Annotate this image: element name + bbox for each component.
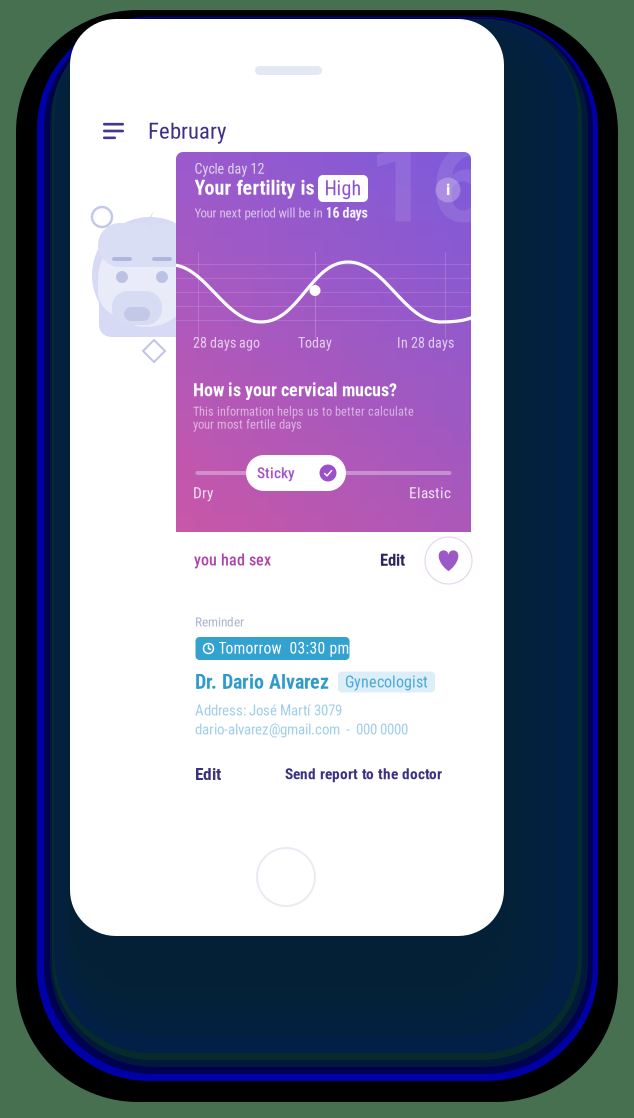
- staticText: Today: [298, 335, 332, 351]
- staticText: you had sex: [194, 551, 271, 569]
- staticText: i: [446, 179, 450, 200]
- staticText: Address: José Martí 3079: [195, 702, 342, 719]
- staticText: Your fertility is: [194, 176, 314, 200]
- staticText: Sticky: [257, 464, 295, 482]
- button[interactable]: Menu: [103, 111, 143, 151]
- staticText: dario-alvarez@gmail.com - 000 0000: [195, 721, 408, 738]
- staticText: February: [148, 118, 226, 144]
- staticText: In 28 days: [397, 335, 454, 351]
- staticText: Edit: [195, 764, 221, 784]
- button[interactable]: Sticky: [246, 455, 346, 491]
- staticText: 09: [176, 179, 208, 216]
- staticText: Dry: [193, 484, 213, 502]
- staticText: Dr. Dario Alvarez: [195, 670, 329, 694]
- staticText: Elastic: [409, 484, 451, 502]
- button[interactable]: Fertility info: [431, 173, 465, 207]
- button[interactable]: you had sex: [194, 540, 304, 580]
- staticText: This information helps us to better calc…: [193, 404, 414, 419]
- staticText: Reminder: [195, 614, 244, 630]
- button[interactable]: Log intimacy: [425, 537, 472, 584]
- staticText: Cycle day 12: [194, 161, 264, 177]
- staticText: Edit: [380, 550, 405, 570]
- staticText: Tomorrow 03:30 pm: [218, 639, 349, 658]
- staticText: 16 days: [325, 205, 367, 221]
- staticText: 16: [368, 120, 494, 248]
- staticText: 28 days ago: [193, 335, 260, 351]
- staticText: your most fertile days: [193, 417, 302, 432]
- staticText: Fri: [182, 215, 201, 237]
- button[interactable]: Edit: [195, 758, 241, 790]
- staticText: Your next period will be in: [194, 205, 325, 221]
- button[interactable]: Edit: [380, 540, 424, 580]
- staticText: High: [324, 177, 361, 200]
- button[interactable]: Send report to the doctor: [285, 758, 447, 790]
- staticText: Gynecologist: [345, 673, 428, 691]
- staticText: How is your cervical mucus?: [193, 379, 397, 401]
- staticText: Send report to the doctor: [285, 765, 442, 783]
